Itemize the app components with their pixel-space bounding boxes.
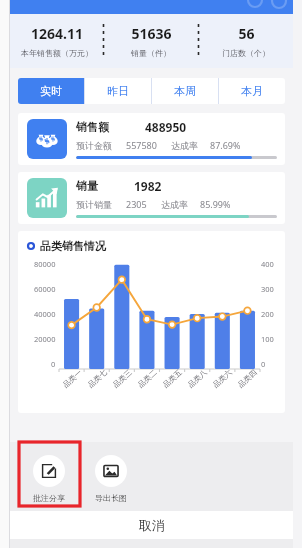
staticText: 200 (261, 309, 274, 319)
staticText: 昨日 (107, 84, 129, 98)
button[interactable]: 销量 (18, 172, 285, 224)
staticText: 40000 (34, 309, 56, 319)
staticText: 达成率 (171, 140, 198, 151)
staticText: 557580 (126, 139, 157, 151)
button[interactable]: 销售额 (18, 113, 285, 165)
staticText: 本周 (174, 84, 196, 98)
staticText: 销量（件） (131, 48, 171, 58)
staticText: 488950 (145, 119, 187, 135)
staticText: 实时 (40, 84, 62, 98)
staticText: 51636 (131, 24, 172, 43)
button[interactable]: 本周 (152, 78, 218, 104)
staticText: 400 (261, 259, 274, 269)
staticText: 品类八 (186, 367, 209, 390)
staticText: 85.99% (200, 198, 231, 210)
staticText: 2305 (126, 198, 147, 210)
staticText: 品类销售情况 (40, 239, 106, 253)
staticText: 80000 (34, 259, 56, 269)
staticText: 20000 (34, 334, 56, 344)
button[interactable]: 导出长图 (84, 448, 138, 503)
staticText: 1264.11 (31, 24, 83, 43)
staticText: 品类二 (136, 367, 159, 390)
staticText: 100 (261, 334, 274, 344)
button[interactable]: 本月 (219, 78, 285, 104)
staticText: 品类一 (61, 367, 84, 390)
staticText: 品类四 (236, 367, 259, 390)
button[interactable]: 51636 (104, 24, 198, 58)
button[interactable]: 1264.11 (10, 24, 103, 58)
staticText: 56 (238, 24, 255, 43)
button[interactable]: 批注分享 (22, 448, 76, 503)
button[interactable]: 取消 (10, 511, 293, 539)
staticText: 批注分享 (33, 493, 65, 503)
staticText: 0 (261, 359, 266, 369)
staticText: 品类六 (211, 367, 234, 390)
staticText: 本年销售额（万元） (21, 48, 93, 58)
staticText: 本月 (241, 84, 263, 98)
staticText: 品类五 (161, 367, 184, 390)
staticText: 60000 (34, 284, 56, 294)
staticText: 取消 (139, 517, 165, 533)
staticText: 销量 (76, 179, 98, 193)
staticText: 销售额 (76, 120, 109, 134)
staticText: 品类七 (86, 367, 109, 390)
staticText: 300 (261, 284, 274, 294)
button[interactable]: 实时 (18, 78, 84, 104)
staticText: 预计金额 (76, 140, 112, 151)
staticText: 1982 (134, 178, 162, 194)
staticText: 87.69% (210, 139, 241, 151)
staticText: 门店数（个） (222, 48, 270, 58)
button[interactable]: 56 (199, 24, 293, 58)
staticText: 0 (51, 359, 56, 369)
staticText: 导出长图 (95, 493, 127, 503)
button[interactable]: 昨日 (85, 78, 151, 104)
staticText: 预计销量 (76, 199, 112, 210)
staticText: 品类三 (111, 367, 134, 390)
staticText: 达成率 (161, 199, 188, 210)
